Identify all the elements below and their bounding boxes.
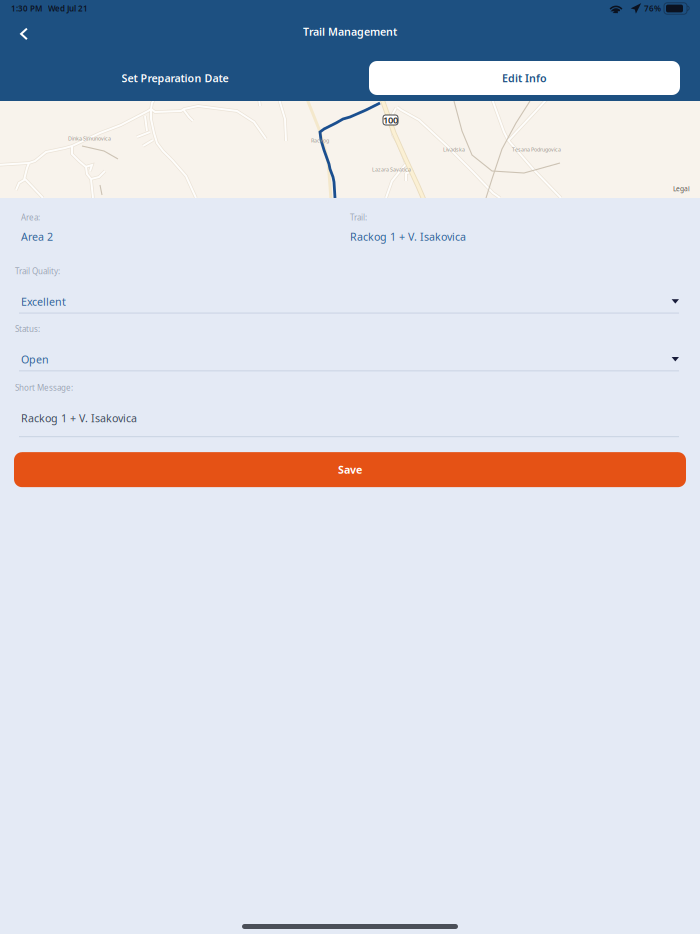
staticText: Rackog [311, 137, 329, 144]
staticText: Status: [15, 324, 40, 334]
staticText: Save [338, 463, 362, 477]
staticText: Short Message: [15, 382, 73, 393]
staticText: Lazara Savatica [372, 166, 411, 173]
staticText: Set Preparation Date [121, 71, 228, 85]
staticText: Trail Management [303, 24, 397, 39]
staticText: Open [21, 352, 49, 366]
button[interactable]: Trail Quality: [0, 266, 700, 314]
staticText: Excellent [21, 294, 66, 309]
staticText: Legal [673, 184, 690, 193]
staticText: 1:30 PM [11, 3, 42, 14]
staticText: Edit Info [502, 71, 547, 85]
staticText: Rackog 1 + V. Isakovica [350, 230, 466, 244]
staticText: Dinka Simunovica [68, 135, 111, 142]
staticText: Livadska [443, 146, 465, 153]
staticText: Trail: [350, 212, 367, 223]
staticText: Area: [21, 212, 40, 223]
staticText: Rackog 1 + V. Isakovica [21, 411, 137, 425]
button[interactable]: Save [0, 452, 700, 487]
staticText: 100 [383, 114, 398, 126]
button[interactable]: Status: [0, 324, 700, 371]
button[interactable]: Edit Info [350, 61, 700, 95]
button[interactable]: Set Preparation Date [0, 61, 350, 95]
staticText: Trail Quality: [15, 266, 60, 276]
staticText: Area 2 [21, 230, 53, 244]
staticText: Tesana Podrugovica [512, 146, 561, 153]
staticText: Wed Jul 21 [48, 3, 88, 14]
staticText: 76% [644, 3, 661, 14]
button[interactable]: Back [0, 17, 48, 51]
